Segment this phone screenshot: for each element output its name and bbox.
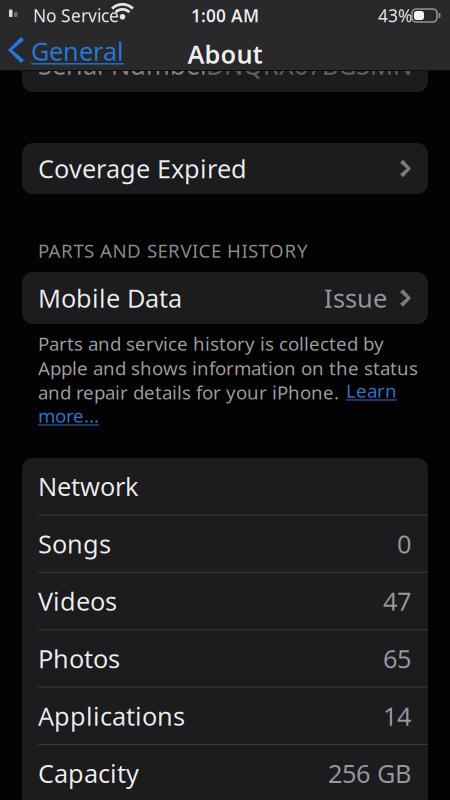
staticText: Photos bbox=[38, 642, 120, 675]
staticText: Coverage Expired bbox=[38, 152, 247, 185]
staticText: DNQRX07BG5MN bbox=[206, 48, 412, 82]
staticText: 256 GB bbox=[328, 756, 411, 790]
staticText: Learn bbox=[346, 378, 397, 403]
staticText: Capacity bbox=[38, 756, 139, 790]
staticText: No Service bbox=[33, 4, 119, 27]
staticText: PARTS AND SERVICE HISTORY bbox=[38, 238, 308, 263]
staticText: Parts and service history is collected b… bbox=[38, 331, 418, 405]
button[interactable]: Coverage Expired bbox=[22, 143, 428, 194]
staticText: 1:00 AM bbox=[191, 4, 259, 27]
staticText: Videos bbox=[38, 584, 117, 618]
staticText: 47 bbox=[383, 584, 411, 618]
button[interactable]: more... bbox=[38, 403, 99, 428]
staticText: About bbox=[187, 37, 262, 71]
staticText: Applications bbox=[38, 699, 185, 733]
staticText: Mobile Data bbox=[38, 281, 182, 315]
button[interactable]: Mobile Data bbox=[22, 272, 428, 324]
button[interactable]: Learn bbox=[346, 378, 397, 403]
staticText: 65 bbox=[383, 642, 411, 675]
staticText: Issue bbox=[324, 281, 387, 315]
staticText: 43% bbox=[378, 4, 412, 27]
staticText: Serial Number bbox=[38, 48, 210, 82]
staticText: Network bbox=[38, 469, 139, 503]
button[interactable]: General bbox=[8, 37, 101, 71]
staticText: 0 bbox=[397, 527, 411, 560]
staticText: General bbox=[31, 34, 124, 68]
staticText: Songs bbox=[38, 527, 111, 560]
staticText: more... bbox=[38, 403, 99, 428]
staticText: 14 bbox=[383, 699, 411, 733]
